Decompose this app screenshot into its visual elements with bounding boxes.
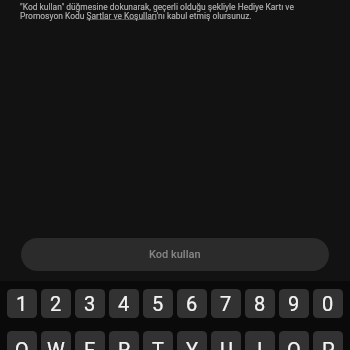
button[interactable]: P [313, 331, 343, 350]
button[interactable]: Q [7, 331, 37, 350]
button[interactable]: U [211, 331, 241, 350]
staticText: 4 [118, 292, 130, 315]
staticText: T [152, 338, 164, 350]
button[interactable]: I [245, 331, 275, 350]
staticText: E [84, 338, 96, 350]
button[interactable]: 2 [41, 289, 71, 318]
button[interactable]: 8 [245, 289, 275, 318]
button[interactable]: 0 [313, 289, 343, 318]
button[interactable]: Y [177, 331, 207, 350]
staticText: P [322, 338, 335, 350]
button[interactable]: Kod kullan [21, 238, 329, 271]
button[interactable]: 9 [279, 289, 309, 318]
button[interactable]: T [143, 331, 173, 350]
staticText: 3 [84, 292, 96, 315]
button[interactable]: O [279, 331, 309, 350]
button[interactable]: 3 [75, 289, 105, 318]
button[interactable]: W [41, 331, 71, 350]
staticText: 0 [322, 292, 334, 315]
staticText: Q [15, 338, 29, 350]
staticText: "Kod kullan" düğmesine dokunarak, geçerl… [20, 2, 331, 21]
staticText: W [47, 338, 65, 350]
button[interactable]: 7 [211, 289, 241, 318]
staticText: 9 [288, 292, 300, 315]
staticText: 7 [220, 292, 232, 315]
staticText: 1 [16, 292, 28, 315]
staticText: O [287, 338, 301, 350]
staticText: 2 [50, 292, 62, 315]
button[interactable]: R [109, 331, 139, 350]
button[interactable]: 4 [109, 289, 139, 318]
button[interactable]: 5 [143, 289, 173, 318]
button[interactable]: 1 [7, 289, 37, 318]
staticText: U [220, 338, 233, 350]
button[interactable]: E [75, 331, 105, 350]
staticText: R [118, 338, 131, 350]
staticText: I [257, 338, 263, 350]
staticText: 6 [186, 292, 198, 315]
staticText: Y [186, 338, 199, 350]
staticText: 5 [152, 292, 164, 315]
button[interactable]: 6 [177, 289, 207, 318]
staticText: Kod kullan [149, 248, 201, 261]
staticText: 8 [254, 292, 266, 315]
